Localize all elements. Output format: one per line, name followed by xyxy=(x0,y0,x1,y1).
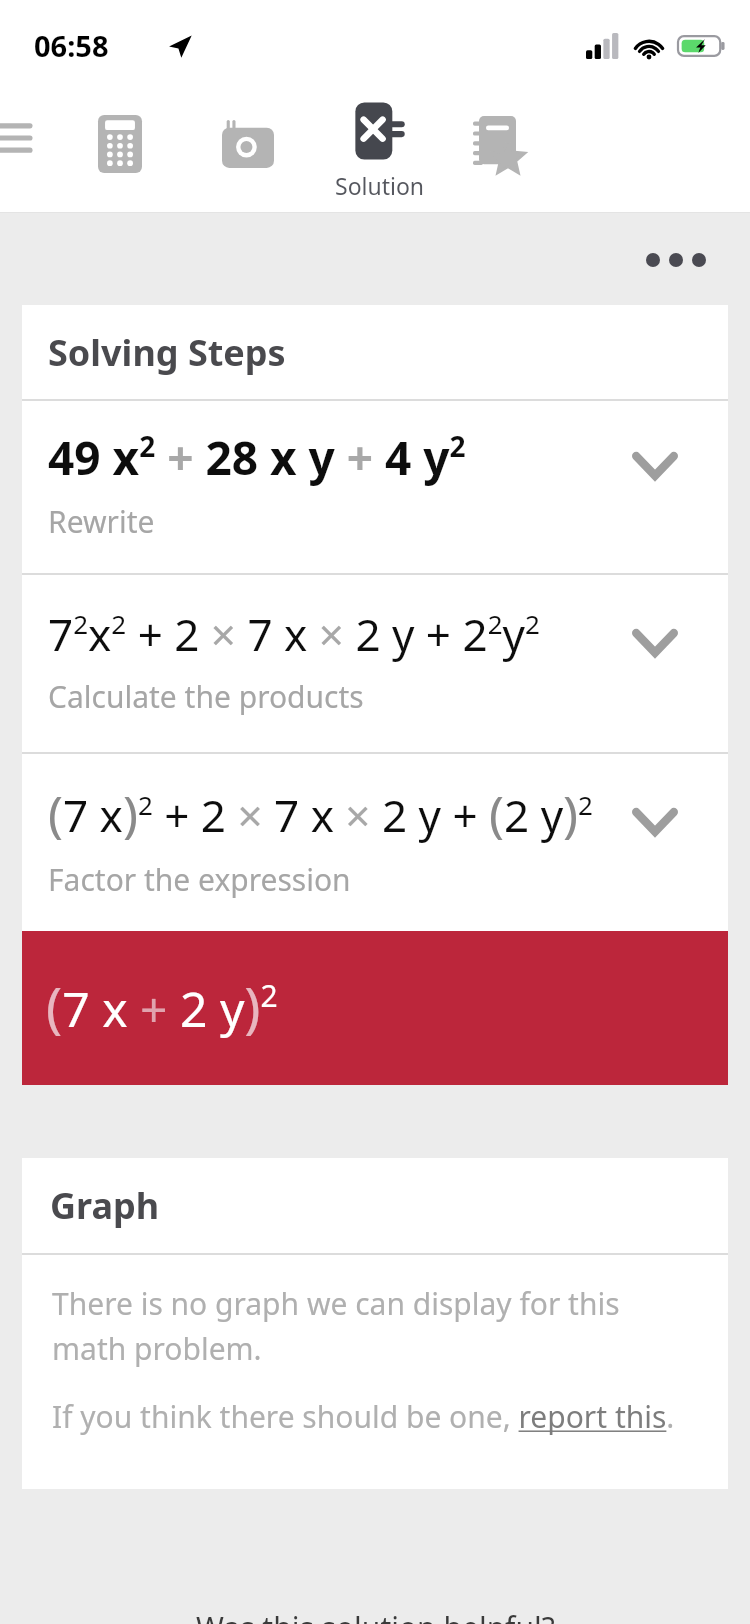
staticText: 49 x2 + 28 x y + 4 y2 xyxy=(48,426,466,489)
button[interactable]: (7 x + 2 y)2 xyxy=(22,931,728,1085)
button[interactable]: 72x2 + 2 × 7 x × 2 y + 22y2 xyxy=(22,575,728,752)
staticText: Graph xyxy=(50,1181,160,1230)
staticText: Solution xyxy=(335,170,425,201)
staticText: Calculate the products xyxy=(48,676,364,717)
button[interactable]: Camera xyxy=(210,106,286,182)
button[interactable]: Solution xyxy=(316,100,444,201)
button[interactable]: More options xyxy=(638,230,714,290)
staticText: Solving Steps xyxy=(48,328,286,377)
button[interactable]: Menu xyxy=(0,110,38,166)
button[interactable]: If you think there should be one, report… xyxy=(52,1396,675,1437)
staticText: 72x2 + 2 × 7 x × 2 y + 22y2 xyxy=(48,604,540,664)
staticText: If you think there should be one, report… xyxy=(52,1396,675,1437)
staticText: Factor the expression xyxy=(48,859,351,900)
button[interactable]: Calculator xyxy=(82,106,158,182)
button[interactable]: Saved xyxy=(460,106,536,182)
staticText: There is no graph we can display for thi… xyxy=(52,1283,620,1368)
staticText: Rewrite xyxy=(48,501,155,542)
staticText: (7 x + 2 y)2 xyxy=(46,969,278,1043)
staticText: 06:58 xyxy=(34,26,109,65)
button[interactable]: (7 x)2 + 2 × 7 x × 2 y + (2 y)2 xyxy=(22,754,728,931)
staticText: (7 x)2 + 2 × 7 x × 2 y + (2 y)2 xyxy=(48,779,593,847)
button[interactable]: 49 x2 + 28 x y + 4 y2 xyxy=(22,401,728,573)
staticText: Was this solution helpful? xyxy=(196,1607,555,1624)
